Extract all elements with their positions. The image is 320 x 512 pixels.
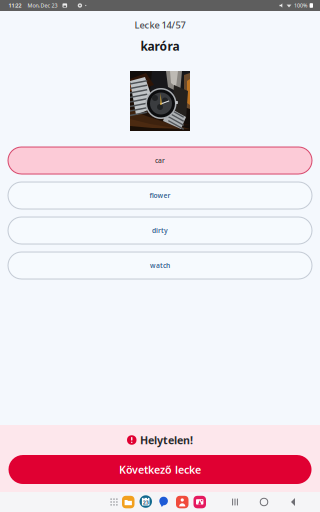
button[interactable]: Contacts (176, 496, 188, 508)
button[interactable]: watch (8, 252, 312, 279)
button[interactable]: car (8, 147, 312, 174)
button[interactable]: Home (255, 492, 273, 512)
staticText: karóra (140, 38, 179, 54)
staticText: dirty (152, 226, 168, 235)
staticText: Mon, Dec 23 (27, 2, 57, 9)
button[interactable]: dirty (8, 217, 312, 244)
staticText: Helytelen! (140, 433, 193, 447)
button[interactable]: Calendar (139, 496, 152, 508)
staticText: 23 (143, 499, 149, 506)
button[interactable]: My Files (122, 496, 134, 508)
button[interactable]: All apps (108, 496, 120, 508)
staticText: Lecke 14/57 (134, 19, 185, 31)
button[interactable]: Back (284, 492, 302, 512)
button[interactable]: flower (8, 182, 312, 209)
staticText: watch (150, 261, 170, 270)
staticText: 11:22 (8, 2, 21, 9)
button[interactable]: Következő lecke (8, 455, 311, 484)
staticText: car (155, 156, 165, 165)
staticText: flower (149, 191, 170, 200)
staticText: Következő lecke (119, 462, 201, 477)
button[interactable]: Messages (157, 496, 170, 508)
button[interactable]: Camera (193, 496, 206, 508)
button[interactable]: Recent apps (226, 492, 244, 512)
staticText: 100% (294, 2, 307, 9)
